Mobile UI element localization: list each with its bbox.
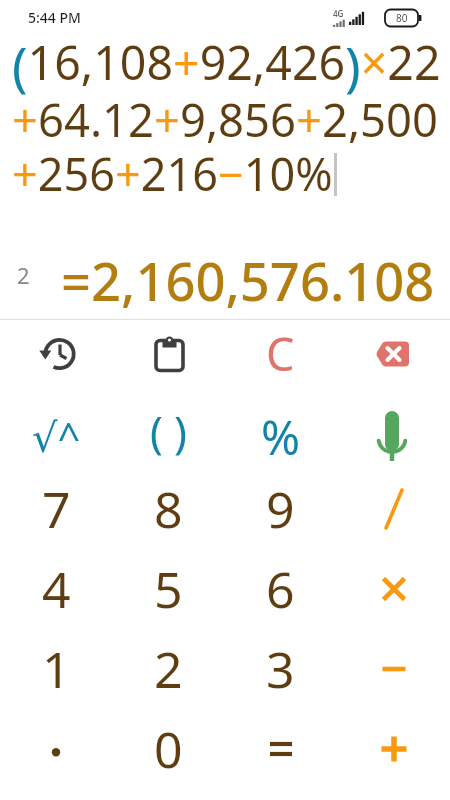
button[interactable]: 7 <box>0 469 112 549</box>
button[interactable] <box>112 320 224 390</box>
staticText: 7 <box>42 475 71 543</box>
staticText: +256+216−10% <box>12 143 333 204</box>
button[interactable]: 1 <box>0 629 112 709</box>
staticText: 2 <box>154 635 183 703</box>
button[interactable]: 9 <box>224 469 337 549</box>
staticText: 6 <box>266 555 295 623</box>
button[interactable]: 3 <box>224 629 337 709</box>
button[interactable] <box>337 320 450 390</box>
staticText: +64.12+9,856+2,500 <box>12 88 438 150</box>
button[interactable] <box>337 629 450 709</box>
staticText: 1 <box>42 635 71 703</box>
button[interactable]: % <box>224 390 337 469</box>
button[interactable]: 5 <box>112 549 224 629</box>
button[interactable] <box>224 709 337 789</box>
staticText: 9 <box>266 475 295 543</box>
staticText: 8 <box>154 475 183 543</box>
button[interactable] <box>0 320 112 390</box>
button[interactable]: 2 <box>112 629 224 709</box>
button[interactable]: 8 <box>112 469 224 549</box>
staticText: (16,108+92,426)×22 <box>12 30 441 102</box>
button[interactable]: ( ) <box>112 390 224 469</box>
staticText: 80 <box>396 11 408 25</box>
staticText: % <box>261 405 301 469</box>
staticText: =2,160,576.108 <box>61 245 435 317</box>
button[interactable] <box>337 469 450 549</box>
staticText: 4 <box>42 555 71 623</box>
button[interactable] <box>337 390 450 469</box>
button[interactable]: 0 <box>112 709 224 789</box>
button[interactable]: √^ <box>0 390 112 469</box>
button[interactable]: 4 <box>0 549 112 629</box>
button[interactable] <box>337 549 450 629</box>
staticText: 5 <box>154 555 183 623</box>
staticText: 3 <box>266 635 295 703</box>
button[interactable] <box>337 709 450 789</box>
staticText: 5:44 PM <box>28 8 81 27</box>
button[interactable]: C <box>224 320 337 390</box>
staticText: 2 <box>17 260 30 290</box>
staticText: 4G <box>333 8 344 19</box>
staticText: 0 <box>154 715 183 783</box>
staticText: ( ) <box>150 402 187 461</box>
button[interactable]: 6 <box>224 549 337 629</box>
button[interactable] <box>0 709 112 789</box>
staticText: C <box>266 323 295 384</box>
staticText: √^ <box>32 409 81 463</box>
